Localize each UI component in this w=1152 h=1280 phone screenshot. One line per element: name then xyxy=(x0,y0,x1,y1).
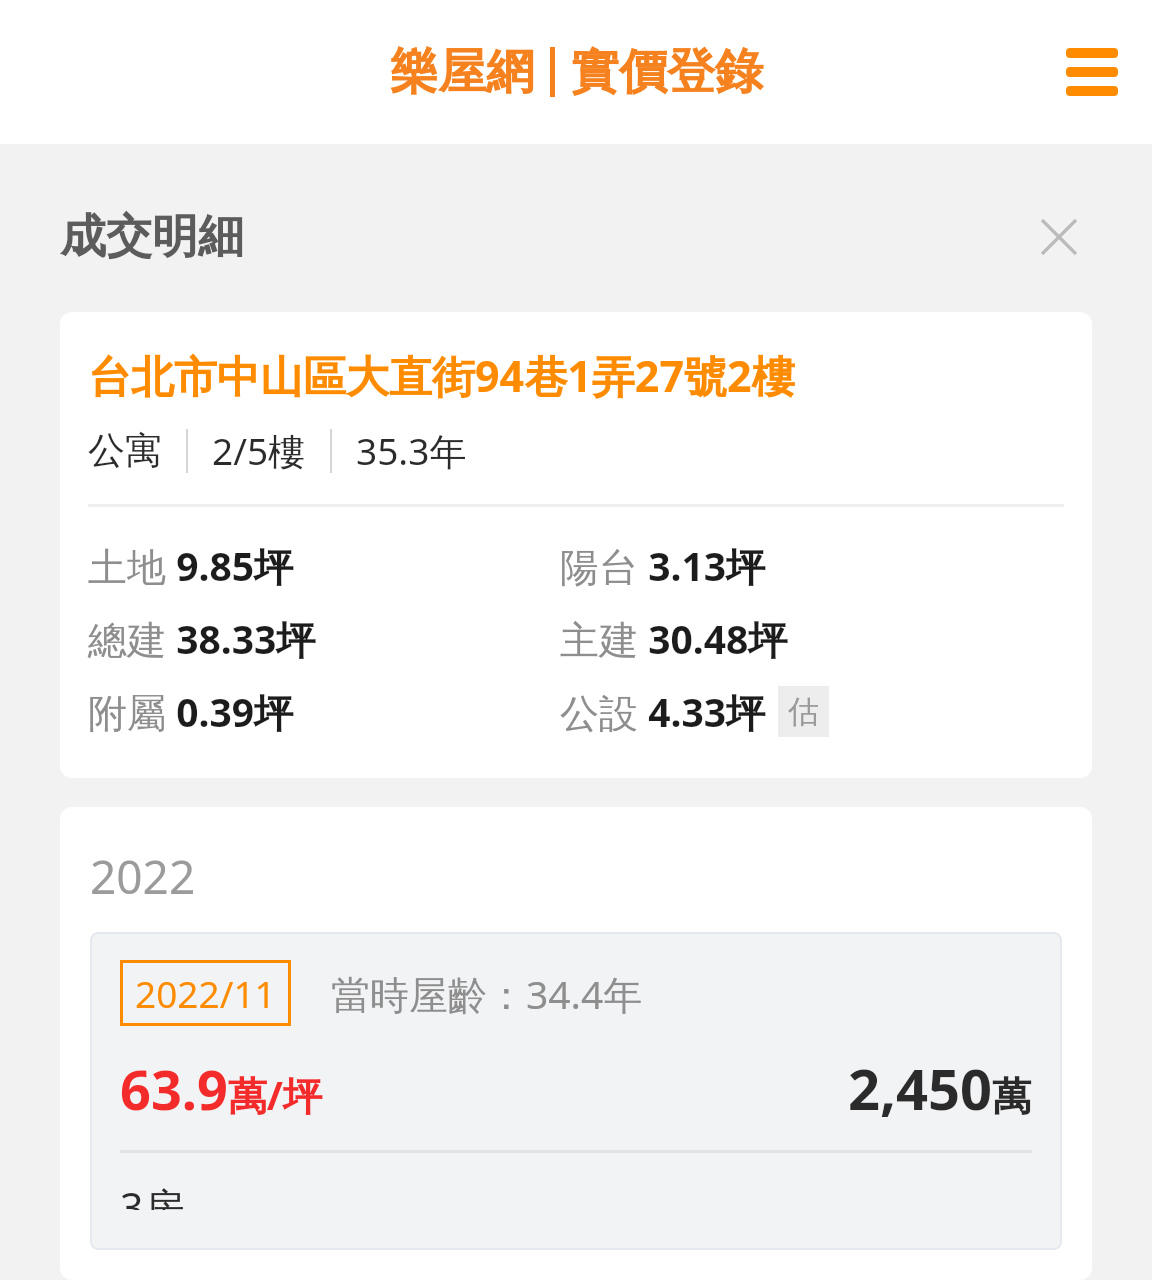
staticText: 2,450萬 xyxy=(848,1050,1032,1126)
staticText: 當時屋齡：34.4年 xyxy=(331,967,643,1020)
staticText: 主建 30.48坪 xyxy=(560,612,788,665)
staticText: 2022/11 xyxy=(135,968,276,1018)
button[interactable]: Close xyxy=(1026,204,1092,270)
staticText: 2022 xyxy=(90,845,196,908)
staticText: 總建 38.33坪 xyxy=(88,612,316,665)
button[interactable]: 2022/11 xyxy=(90,932,1062,1250)
staticText: 估 xyxy=(788,692,819,731)
staticText: 附屬 0.39坪 xyxy=(88,685,294,738)
button[interactable]: 台北市中山區大直街94巷1弄27號2樓 xyxy=(60,312,1092,778)
staticText: 台北市中山區大直街94巷1弄27號2樓 xyxy=(88,346,795,405)
staticText: 成交明細 xyxy=(60,208,244,266)
staticText: 公設 4.33坪 xyxy=(560,685,766,738)
staticText: 實價登錄 xyxy=(571,42,763,102)
staticText: 63.9萬/坪 xyxy=(120,1052,323,1126)
staticText: 土地 9.85坪 xyxy=(88,539,294,592)
staticText: 3房 xyxy=(120,1179,185,1210)
staticText: 2/5樓 xyxy=(212,425,306,476)
button[interactable]: Menu xyxy=(1054,34,1130,110)
staticText: 公寓 xyxy=(88,427,162,474)
staticText: 35.3年 xyxy=(356,425,467,476)
staticText: 陽台 3.13坪 xyxy=(560,539,766,592)
staticText: 樂屋網 xyxy=(390,42,534,102)
